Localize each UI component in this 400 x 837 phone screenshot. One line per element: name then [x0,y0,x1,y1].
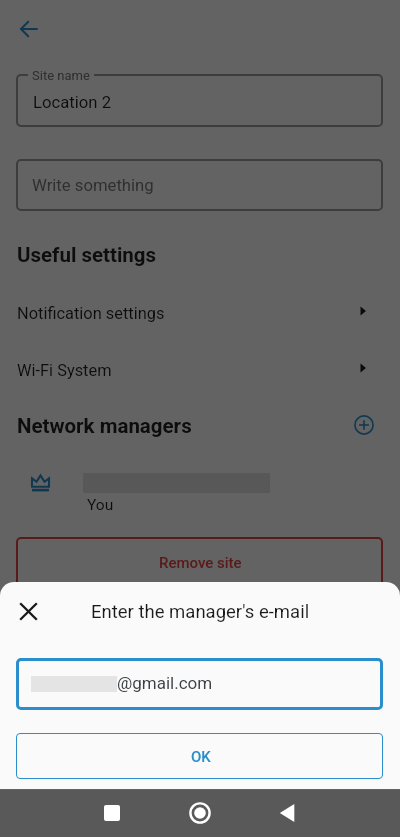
button[interactable]: Back [271,797,303,829]
button[interactable]: Close [10,593,46,629]
staticText: Write something [32,176,154,196]
button[interactable]: Recent apps [96,797,128,829]
button[interactable]: Notification settings [0,292,400,337]
button[interactable]: Wi-Fi System [0,349,400,394]
staticText: @gmail.com [117,673,213,693]
button[interactable]: Home [184,797,216,829]
staticText: Notification settings [17,304,165,323]
button[interactable]: OK [16,733,383,779]
staticText: Location 2 [33,93,112,113]
staticText: Remove site [159,554,242,572]
staticText: Useful settings [17,243,157,267]
staticText: You [87,496,114,514]
button[interactable]: @gmail.com [16,658,383,710]
button[interactable]: Location 2 [16,74,383,127]
button[interactable]: Add manager [348,409,379,440]
staticText: Network managers [17,414,192,438]
button[interactable]: Write something [16,159,383,211]
staticText: Enter the manager's e-mail [91,601,310,623]
staticText: Wi-Fi System [17,361,112,380]
staticText: OK [191,748,211,766]
button[interactable]: Back [11,11,47,47]
button[interactable]: Remove site [16,537,383,590]
staticText: Site name [32,68,90,83]
